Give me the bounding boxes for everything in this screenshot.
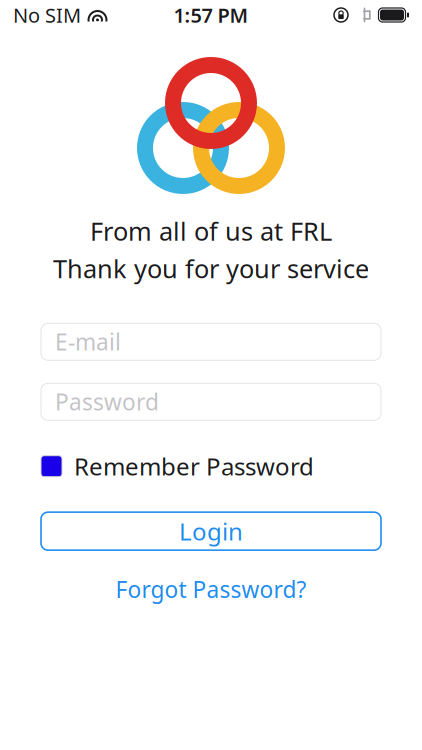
staticText: E-mail bbox=[55, 327, 121, 357]
button[interactable]: Login bbox=[41, 512, 381, 550]
staticText: From all of us at FRL bbox=[90, 214, 332, 248]
staticText: Forgot Password? bbox=[115, 574, 306, 604]
button[interactable]: Remember Password bbox=[41, 450, 381, 482]
staticText: Login bbox=[179, 515, 243, 547]
button[interactable]: E-mail bbox=[41, 323, 381, 360]
staticText: Password bbox=[55, 387, 159, 417]
staticText: Remember Password bbox=[74, 450, 314, 482]
staticText: 1:57 PM bbox=[173, 2, 248, 28]
button[interactable]: Forgot Password? bbox=[115, 574, 306, 604]
button[interactable]: Password bbox=[41, 383, 381, 420]
staticText: Thank you for your service bbox=[53, 252, 369, 285]
staticText: No SIM bbox=[13, 2, 81, 28]
